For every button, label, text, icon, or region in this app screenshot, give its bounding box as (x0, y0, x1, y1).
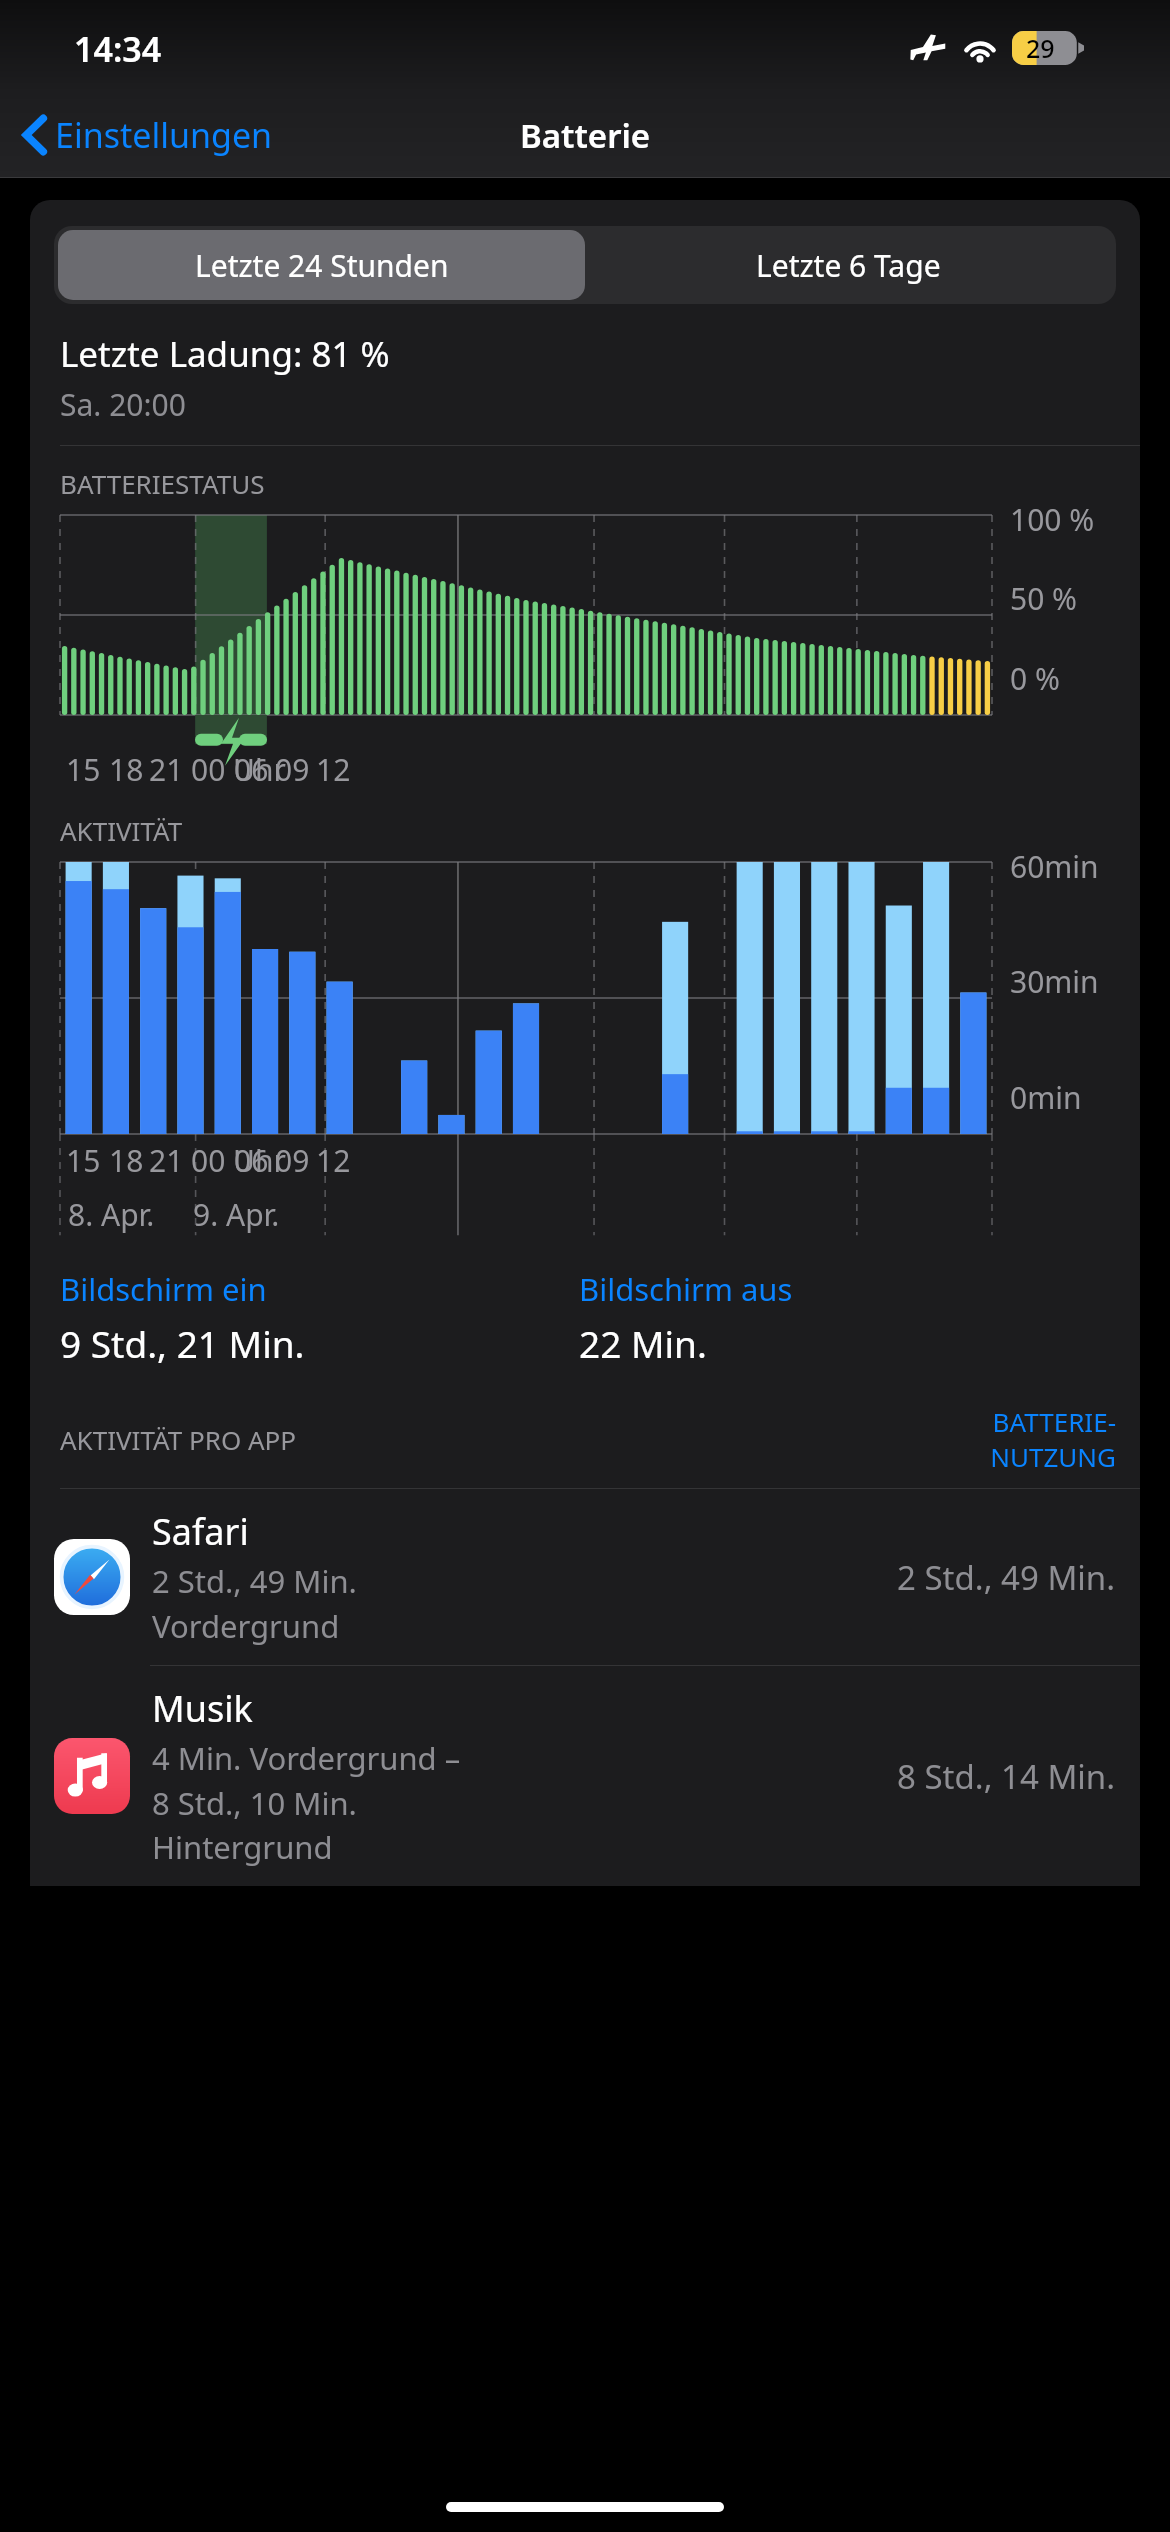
button[interactable]: Letzte 24 Stunden (58, 230, 585, 300)
staticText: 06 (234, 1140, 269, 1181)
staticText: Sa. 20:00 (60, 384, 186, 425)
staticText: 00 Uhr (191, 1140, 286, 1181)
staticText: 12 (316, 1140, 351, 1181)
staticText: 06 (234, 749, 269, 790)
staticText: BATTERIESTATUS (60, 466, 265, 501)
staticText: 60min (1010, 846, 1099, 887)
staticText: 100 % (1010, 499, 1095, 540)
staticText: 21 (149, 1140, 184, 1181)
staticText: 9 Std., 21 Min. (60, 1318, 305, 1368)
staticText: 15 (66, 1140, 101, 1181)
staticText: 2 Std., 49 Min. Vordergrund (152, 1560, 357, 1647)
staticText: 12 (316, 749, 351, 790)
staticText: 4 Min. Vordergrund – 8 Std., 10 Min. Hin… (152, 1737, 461, 1868)
staticText: AKTIVITÄT (60, 813, 183, 848)
staticText: Einstellungen (55, 112, 273, 158)
button[interactable]: Letzte 6 Tage (585, 230, 1112, 300)
button[interactable]: Musik (30, 1666, 1140, 1886)
staticText: 9. Apr. (193, 1194, 280, 1235)
staticText: 09 (275, 1140, 310, 1181)
staticText: 0min (1010, 1077, 1082, 1118)
staticText: 22 Min. (579, 1318, 707, 1368)
staticText: 21 (149, 749, 184, 790)
button[interactable]: BATTERIE- NUTZUNG (990, 1404, 1116, 1474)
staticText: 00 Uhr (191, 749, 286, 790)
staticText: 8 Std., 14 Min. (897, 1754, 1116, 1799)
staticText: 15 (66, 749, 101, 790)
staticText: 8. Apr. (68, 1194, 155, 1235)
staticText: Bildschirm ein (60, 1268, 267, 1310)
staticText: 29 (1026, 31, 1055, 65)
staticText: 09 (275, 749, 310, 790)
button[interactable]: Safari (30, 1489, 1140, 1665)
staticText: 0 % (1010, 658, 1060, 699)
staticText: Bildschirm aus (579, 1268, 793, 1310)
staticText: AKTIVITÄT PRO APP (60, 1422, 297, 1457)
staticText: 30min (1010, 961, 1099, 1002)
staticText: Batterie (520, 113, 651, 158)
staticText: Letzte 24 Stunden (195, 245, 449, 286)
staticText: Letzte 6 Tage (756, 245, 941, 286)
staticText: Letzte Ladung: 81 % (60, 330, 390, 378)
staticText: 14:34 (74, 26, 162, 72)
button[interactable]: Einstellungen (18, 104, 279, 166)
staticText: 2 Std., 49 Min. (897, 1555, 1116, 1600)
staticText: Musik (152, 1684, 253, 1733)
staticText: 50 % (1010, 578, 1078, 619)
staticText: 18 (109, 749, 144, 790)
staticText: Safari (152, 1507, 249, 1556)
staticText: 18 (109, 1140, 144, 1181)
